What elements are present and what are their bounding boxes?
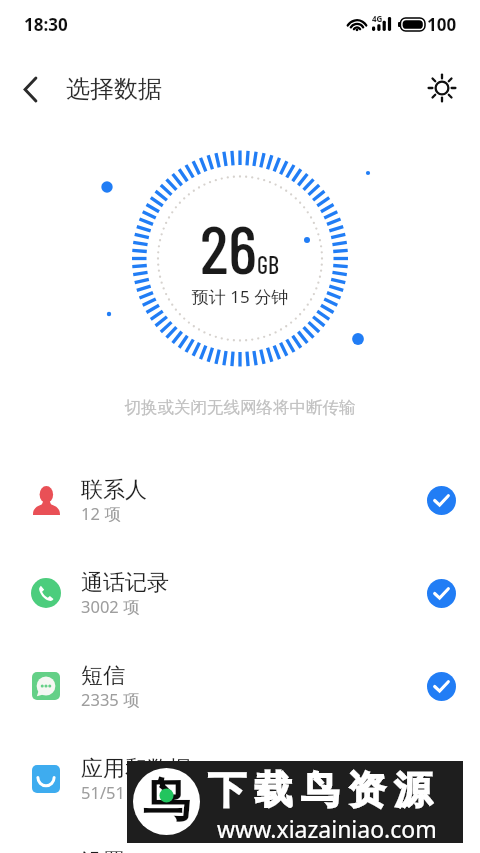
staticText: 2335 项: [81, 688, 140, 711]
staticText: GB: [257, 250, 279, 279]
staticText: 51/51 项: [81, 781, 146, 804]
staticText: www.xiazainiao.com: [217, 813, 437, 844]
staticText: 通话记录: [81, 569, 169, 597]
button[interactable]: 设置: [0, 823, 480, 853]
button[interactable]: 短信: [0, 637, 480, 730]
staticText: 鸟: [143, 771, 190, 830]
staticText: 切换或关闭无线网络将中断传输: [0, 397, 480, 418]
staticText: 短信: [81, 662, 125, 690]
staticText: 设置: [81, 848, 125, 853]
staticText: 选择数据: [66, 74, 162, 104]
staticText: 下载鸟资源: [208, 766, 441, 814]
button[interactable]: Back: [8, 67, 52, 111]
staticText: 100: [427, 13, 457, 36]
staticText: 预计 15 分钟: [0, 285, 480, 308]
button[interactable]: 应用和数据: [0, 730, 480, 823]
staticText: 3002 项: [81, 595, 140, 618]
staticText: 26: [200, 206, 257, 288]
staticText: 12 项: [81, 502, 121, 525]
button[interactable]: 联系人: [0, 451, 480, 544]
staticText: 4G: [372, 13, 383, 24]
staticText: 18:30: [24, 13, 68, 36]
button[interactable]: 通话记录: [0, 544, 480, 637]
staticText: 应用和数据: [81, 755, 191, 783]
staticText: 联系人: [81, 476, 147, 504]
button[interactable]: Brightness: [420, 66, 464, 110]
